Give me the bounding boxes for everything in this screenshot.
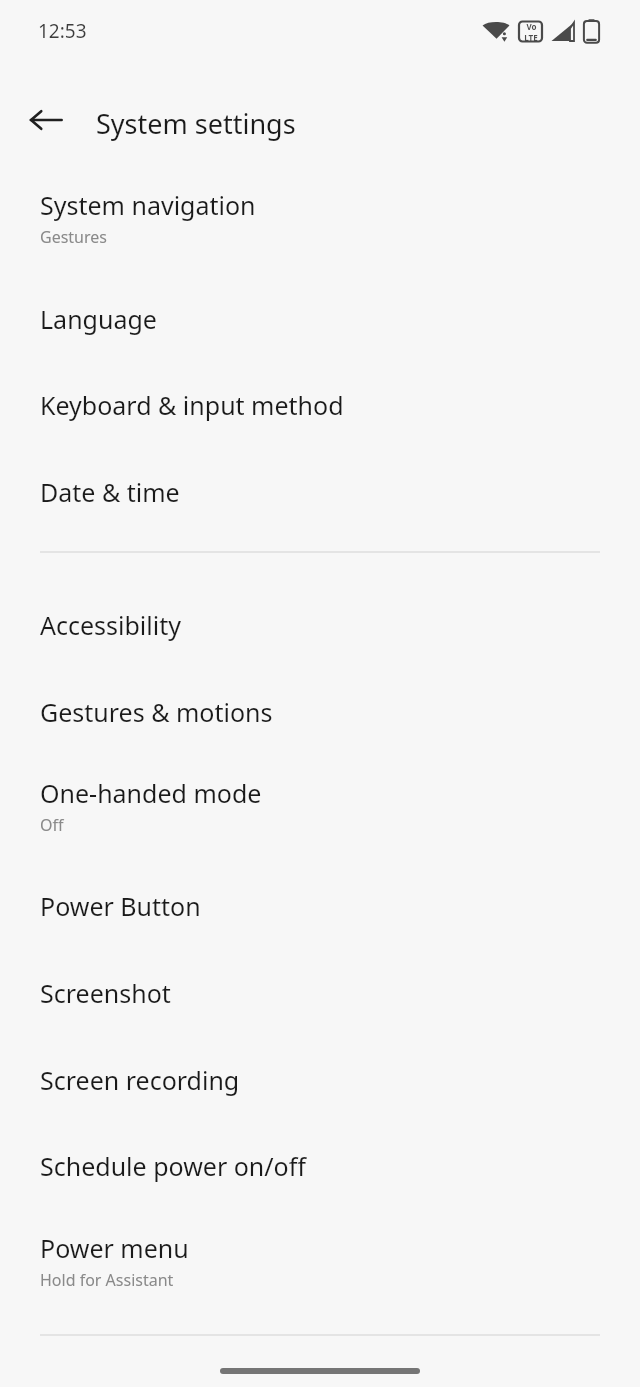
staticText: Accessibility [40,608,181,642]
staticText: One-handed mode [40,776,262,810]
staticText: Language [40,302,157,336]
staticText: LTE [524,32,538,43]
staticText: Gestures & motions [40,695,273,729]
button[interactable]: Language [0,290,640,346]
button[interactable]: One-handed mode [0,764,640,836]
staticText: Gestures [40,226,107,248]
staticText: System settings [96,105,296,142]
button[interactable]: Screen recording [0,1051,640,1107]
button[interactable]: Gestures & motions [0,683,640,739]
button[interactable]: Accessibility [0,596,640,652]
staticText: Screenshot [40,976,171,1010]
button[interactable]: System navigation [0,176,640,248]
staticText: Power menu [40,1231,189,1265]
button[interactable]: Screenshot [0,964,640,1020]
staticText: Screen recording [40,1063,240,1097]
button[interactable]: Keyboard & input method [0,376,640,432]
button[interactable]: Power Button [0,877,640,933]
button[interactable]: Schedule power on/off [0,1137,640,1193]
staticText: Vo [526,21,537,32]
staticText: Keyboard & input method [40,388,344,422]
staticText: Power Button [40,889,201,923]
staticText: Schedule power on/off [40,1149,306,1183]
staticText: Hold for Assistant [40,1269,174,1291]
staticText: Date & time [40,475,180,509]
staticText: System navigation [40,188,256,222]
button[interactable]: Power menu [0,1219,640,1291]
staticText: Off [40,814,64,836]
button[interactable]: Back [22,96,70,144]
button[interactable]: Date & time [0,463,640,519]
staticText: 12:53 [38,18,87,44]
